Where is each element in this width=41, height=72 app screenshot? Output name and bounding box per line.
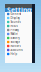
staticText: Privacy: [10, 28, 18, 32]
staticText: Accounts: [10, 48, 22, 52]
staticText: Focus: [10, 24, 17, 28]
staticText: Display: [10, 16, 19, 20]
staticText: Wallet: [10, 32, 18, 36]
staticText: General: [10, 12, 21, 16]
staticText: Help: [10, 52, 17, 56]
staticText: Notices: [10, 44, 20, 48]
staticText: Storage: [10, 40, 20, 44]
staticText: Sounds: [10, 20, 20, 24]
staticText: Battery: [10, 36, 19, 40]
staticText: Settings: [7, 6, 34, 14]
